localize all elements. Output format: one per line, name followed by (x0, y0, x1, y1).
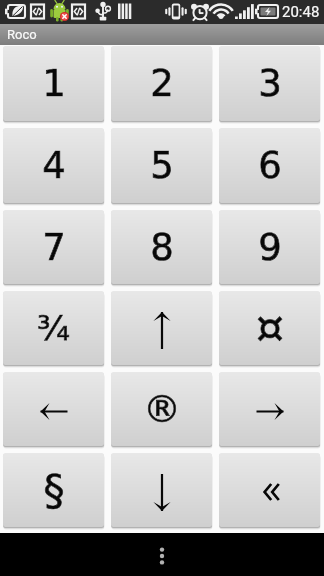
button[interactable]: 9 (219, 210, 320, 284)
staticText: 7 (42, 226, 66, 269)
button[interactable]: Down (111, 453, 212, 527)
staticText: ¤ (256, 302, 284, 353)
staticText: 6 (258, 144, 282, 187)
button[interactable]: Section sign (3, 453, 104, 527)
staticText: 5 (150, 144, 174, 187)
button[interactable]: 7 (3, 210, 104, 284)
staticText: 20:48 (282, 3, 320, 21)
staticText: 2 (150, 62, 174, 105)
staticText: ¤ (256, 302, 284, 353)
staticText: 2 (150, 62, 174, 105)
staticText: ® (143, 387, 181, 431)
button[interactable]: 4 (3, 128, 104, 203)
staticText: Roco (7, 27, 37, 42)
button[interactable]: 5 (111, 128, 212, 203)
staticText: 5 (150, 144, 174, 187)
button[interactable]: Up (111, 291, 212, 365)
button[interactable]: More options (141, 534, 183, 576)
staticText: § (43, 465, 65, 515)
staticText: § (43, 465, 65, 515)
staticText: 3 (258, 62, 282, 105)
button[interactable]: Three quarters (3, 291, 104, 365)
staticText: 6 (258, 144, 282, 187)
staticText: 4 (42, 144, 66, 187)
staticText: ¾ (37, 308, 70, 348)
staticText: 3 (258, 62, 282, 105)
staticText: 9 (258, 226, 282, 269)
staticText: 7 (42, 226, 66, 269)
staticText: 8 (150, 226, 174, 269)
button[interactable]: 6 (219, 128, 320, 203)
button[interactable]: 3 (219, 46, 320, 121)
button[interactable]: Registered sign (111, 372, 212, 446)
button[interactable]: 2 (111, 46, 212, 121)
staticText: ® (143, 387, 181, 431)
staticText: ¾ (37, 308, 70, 348)
staticText: 1 (42, 62, 66, 105)
button[interactable]: 8 (111, 210, 212, 284)
button[interactable]: Left guillemet (219, 453, 320, 527)
staticText: 9 (258, 226, 282, 269)
staticText: 4 (42, 144, 66, 187)
button[interactable]: 1 (3, 46, 104, 121)
staticText: 8 (150, 226, 174, 269)
staticText: 1 (42, 62, 66, 105)
button[interactable]: Left (3, 372, 104, 446)
button[interactable]: Currency sign (219, 291, 320, 365)
button[interactable]: Right (219, 372, 320, 446)
